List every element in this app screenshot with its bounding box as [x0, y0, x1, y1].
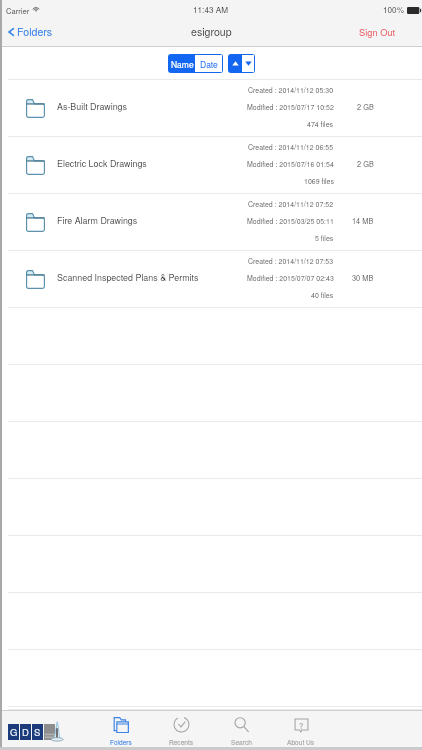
staticText: Created : 2014/11/12 07:53 — [248, 256, 334, 266]
button[interactable]: ? — [271, 710, 331, 750]
staticText: 100% — [383, 4, 404, 16]
staticText: 40 files — [311, 290, 334, 300]
staticText: Date — [200, 58, 218, 70]
button[interactable]: Folders — [4, 21, 55, 42]
staticText: Carrier — [6, 5, 30, 16]
staticText: Scanned Inspected Plans & Permits — [57, 271, 199, 284]
staticText: As-Built Drawings — [57, 100, 127, 113]
button[interactable]: Date — [195, 55, 222, 72]
staticText: Name — [171, 58, 194, 70]
button[interactable]: Sign Out — [357, 22, 398, 41]
staticText: Modified : 2015/03/25 05:11 — [247, 216, 334, 226]
staticText: S — [34, 725, 41, 739]
button[interactable]: Scanned Inspected Plans & Permits — [0, 251, 422, 308]
staticText: Folders — [110, 737, 132, 746]
button[interactable]: Electric Lock Drawings — [0, 137, 422, 194]
staticText: 30 MB — [352, 273, 374, 284]
staticText: 474 files — [307, 119, 334, 129]
staticText: esigroup — [191, 24, 232, 39]
staticText: Modified : 2015/07/17 10:52 — [247, 102, 334, 112]
staticText: Folders — [17, 24, 53, 39]
staticText: ? — [299, 720, 304, 731]
staticText: Modified : 2015/07/16 01:54 — [247, 159, 334, 169]
staticText: 1069 files — [304, 176, 334, 186]
button[interactable]: Search — [211, 710, 271, 750]
staticText: 2 GB — [357, 159, 374, 170]
staticText: Sign Out — [359, 25, 396, 38]
staticText: Created : 2014/11/12 07:52 — [248, 199, 334, 209]
button[interactable]: Recents — [151, 710, 211, 750]
staticText: Modified : 2015/07/07 02:43 — [247, 273, 334, 283]
button[interactable]: Sort descending — [242, 55, 254, 72]
button[interactable]: GDS logo — [8, 720, 66, 742]
button[interactable]: Fire Alarm Drawings — [0, 194, 422, 251]
staticText: Search — [231, 737, 252, 746]
staticText: Electric Lock Drawings — [57, 157, 147, 170]
staticText: About Us — [287, 737, 315, 746]
button[interactable]: Sort ascending — [229, 55, 242, 72]
staticText: 5 files — [315, 233, 334, 243]
staticText: 14 MB — [352, 216, 374, 227]
button[interactable]: Name — [169, 55, 195, 72]
staticText: Created : 2014/11/12 06:55 — [248, 142, 334, 152]
staticText: 11:43 AM — [193, 4, 229, 16]
button[interactable]: As-Built Drawings — [0, 80, 422, 137]
staticText: D — [22, 725, 29, 739]
staticText: Fire Alarm Drawings — [57, 214, 138, 227]
button[interactable]: Folders — [91, 710, 151, 750]
staticText: Created : 2014/11/12 05:30 — [248, 85, 334, 95]
staticText: G — [10, 725, 18, 739]
staticText: 2 GB — [357, 102, 374, 113]
staticText: Recents — [169, 737, 194, 746]
